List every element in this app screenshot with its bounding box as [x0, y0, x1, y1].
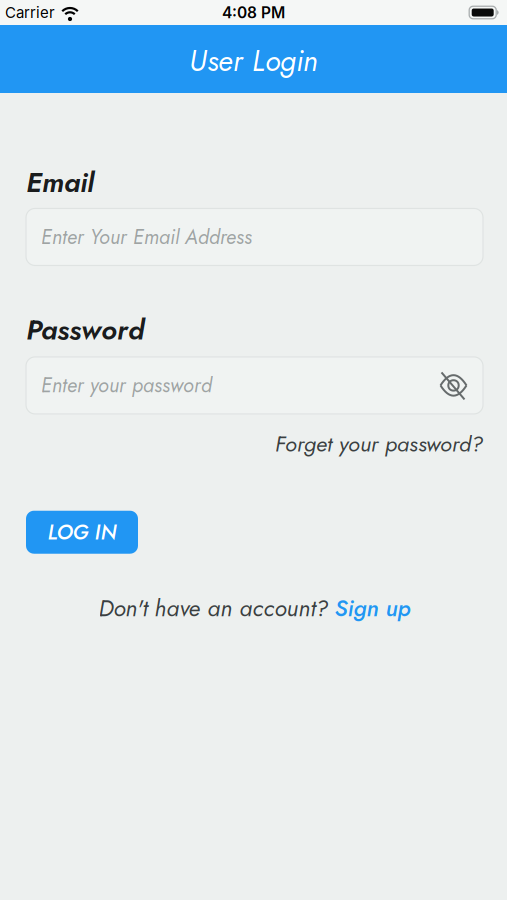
staticText: Email: [26, 162, 94, 202]
staticText: User Login: [189, 40, 318, 82]
button[interactable]: [440, 374, 467, 396]
button[interactable]: Forget your password?: [275, 428, 483, 460]
staticText: Carrier: [5, 3, 55, 21]
staticText: Enter Your Email Address: [41, 222, 252, 251]
staticText: 4:08 PM: [222, 3, 285, 22]
button[interactable]: Enter your password: [26, 357, 483, 414]
button[interactable]: Enter Your Email Address: [26, 208, 483, 265]
staticText: Enter your password: [41, 371, 212, 400]
staticText: Forget your password?: [275, 428, 483, 460]
staticText: Password: [26, 309, 144, 350]
button[interactable]: LOG IN: [26, 511, 138, 554]
staticText: LOG IN: [47, 517, 116, 547]
button[interactable]: Sign up: [334, 592, 410, 625]
staticText: Don't have an account?: [98, 592, 327, 625]
staticText: Sign up: [334, 592, 410, 625]
